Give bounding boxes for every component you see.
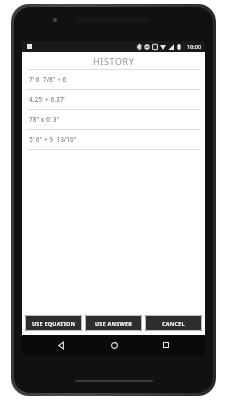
staticText: 4.25' + 6.37' (29, 95, 65, 104)
button[interactable]: Recent apps (152, 335, 180, 355)
button[interactable]: USE ANSWER (85, 315, 142, 331)
staticText: 5' 6" + 9 13/16" (29, 135, 77, 144)
button[interactable]: 4.25' + 6.37' (22, 90, 205, 110)
button[interactable]: CANCEL (145, 315, 202, 331)
staticText: 78" x 6' 3" (29, 115, 60, 124)
button[interactable]: Home (100, 335, 128, 355)
button[interactable]: 7' 6 7/8" ÷ 6 (22, 70, 205, 90)
staticText: 7' 6 7/8" ÷ 6 (29, 75, 67, 84)
staticText: USE EQUATION (32, 320, 76, 327)
button[interactable]: 5' 6" + 9 13/16" (22, 130, 205, 150)
staticText: HISTORY (93, 55, 135, 67)
button[interactable]: USE EQUATION (25, 315, 82, 331)
button[interactable]: Back (47, 335, 75, 355)
button[interactable]: 78" x 6' 3" (22, 110, 205, 130)
staticText: 10:00 (187, 43, 202, 50)
staticText: CANCEL (162, 320, 185, 327)
staticText: USE ANSWER (95, 320, 133, 327)
